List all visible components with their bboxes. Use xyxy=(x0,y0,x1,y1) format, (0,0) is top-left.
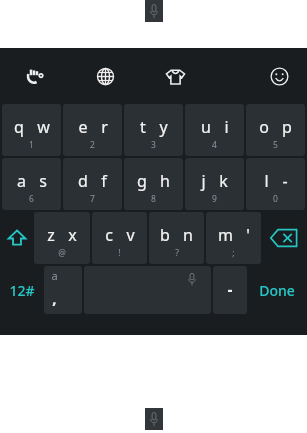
staticText: v xyxy=(126,224,135,246)
button[interactable]: Gesture typing xyxy=(0,48,70,104)
staticText: k xyxy=(219,170,228,192)
button[interactable]: a xyxy=(2,158,61,210)
staticText: - xyxy=(282,170,288,192)
button[interactable]: z xyxy=(34,212,90,264)
staticText: m xyxy=(218,224,233,246)
staticText: x xyxy=(68,224,77,246)
staticText: w xyxy=(37,116,50,138)
staticText: e xyxy=(78,116,88,138)
staticText: q xyxy=(14,116,24,138)
button[interactable]: t xyxy=(124,104,183,156)
button[interactable]: j xyxy=(185,158,244,210)
staticText: 5 xyxy=(273,139,278,151)
staticText: 0 xyxy=(273,193,278,205)
staticText: y xyxy=(159,116,168,138)
button[interactable]: q xyxy=(2,104,61,156)
staticText: z xyxy=(47,224,55,246)
staticText: @ xyxy=(58,247,66,259)
staticText: i xyxy=(224,116,229,138)
staticText: o xyxy=(259,116,269,138)
staticText: ' xyxy=(246,224,250,246)
button[interactable]: Change language xyxy=(70,48,140,104)
staticText: t xyxy=(140,116,146,138)
staticText: h xyxy=(160,170,170,192)
button[interactable]: Space xyxy=(84,266,211,314)
button[interactable]: u xyxy=(185,104,244,156)
staticText: n xyxy=(183,224,193,246)
button[interactable]: d xyxy=(63,158,122,210)
button[interactable]: m xyxy=(206,212,261,264)
button[interactable]: Shift xyxy=(2,212,32,264)
button[interactable]: Theme xyxy=(140,48,210,104)
staticText: 6 xyxy=(29,193,34,205)
staticText: b xyxy=(160,224,170,246)
staticText: g xyxy=(137,170,147,192)
button[interactable]: a xyxy=(44,266,82,314)
staticText: 2 xyxy=(90,139,95,151)
staticText: j xyxy=(201,170,206,192)
staticText: u xyxy=(201,116,211,138)
staticText: ! xyxy=(118,247,121,259)
button[interactable]: g xyxy=(124,158,183,210)
staticText: 3 xyxy=(151,139,156,151)
staticText: a xyxy=(51,268,58,283)
staticText: c xyxy=(105,224,113,246)
staticText: d xyxy=(78,170,88,192)
staticText: p xyxy=(282,116,292,138)
staticText: f xyxy=(101,170,107,192)
staticText: ; xyxy=(232,247,235,259)
button[interactable]: c xyxy=(92,212,147,264)
staticText: a xyxy=(17,170,26,192)
button[interactable]: l xyxy=(246,158,305,210)
staticText: ? xyxy=(175,247,179,259)
staticText: Done xyxy=(259,281,295,300)
staticText: 8 xyxy=(151,193,156,205)
staticText: 9 xyxy=(212,193,217,205)
staticText: 12# xyxy=(9,281,35,300)
button[interactable]: Emoji xyxy=(251,48,307,104)
staticText: 4 xyxy=(212,139,217,151)
button[interactable]: 12# xyxy=(2,266,42,314)
button[interactable]: o xyxy=(246,104,305,156)
staticText: r xyxy=(101,116,108,138)
staticText: 1 xyxy=(29,139,34,151)
staticText: l xyxy=(264,170,269,192)
button[interactable]: b xyxy=(149,212,204,264)
button[interactable]: e xyxy=(63,104,122,156)
staticText: , xyxy=(52,288,57,308)
staticText: s xyxy=(39,170,47,192)
staticText: 7 xyxy=(90,193,95,205)
button[interactable]: Backspace xyxy=(263,212,305,264)
button[interactable]: Done xyxy=(249,266,305,314)
button[interactable]: Period xyxy=(213,266,247,314)
